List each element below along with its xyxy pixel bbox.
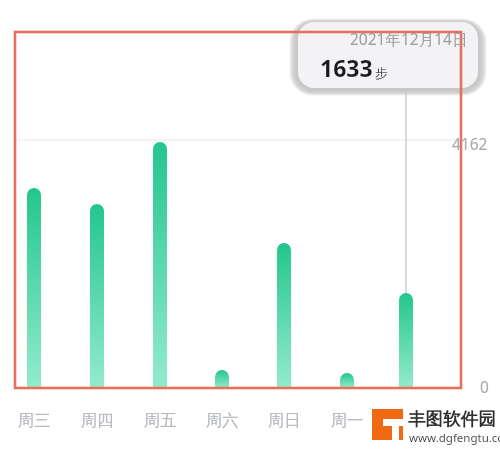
button[interactable]: Weekly step count chart bbox=[0, 0, 500, 449]
